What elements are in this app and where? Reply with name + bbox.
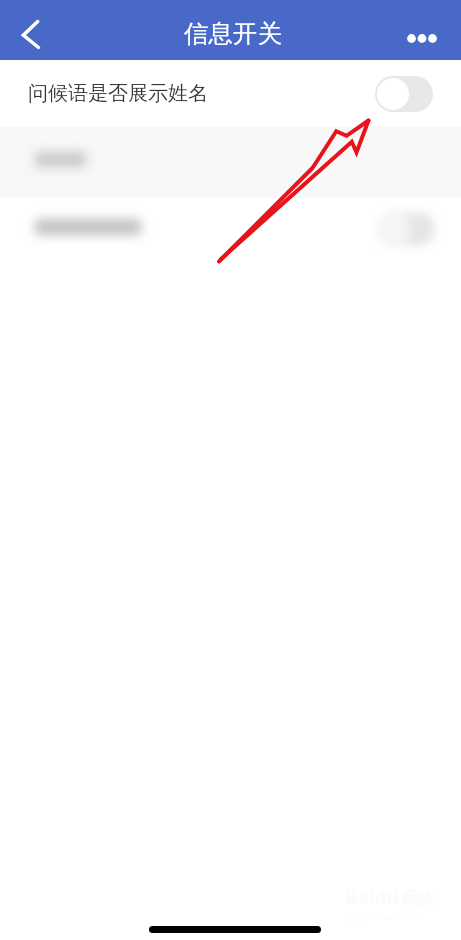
button[interactable]: Setting row [0, 127, 461, 198]
button[interactable]: Setting row [0, 198, 461, 264]
button[interactable]: 问候语是否展示姓名 [0, 60, 461, 127]
button[interactable]: More options [404, 4, 456, 56]
staticText: 问候语是否展示姓名 [28, 81, 208, 106]
staticText: 信息开关 [184, 18, 282, 49]
button[interactable]: Show name in greeting, off [375, 76, 433, 112]
button[interactable]: Back [0, 4, 52, 56]
